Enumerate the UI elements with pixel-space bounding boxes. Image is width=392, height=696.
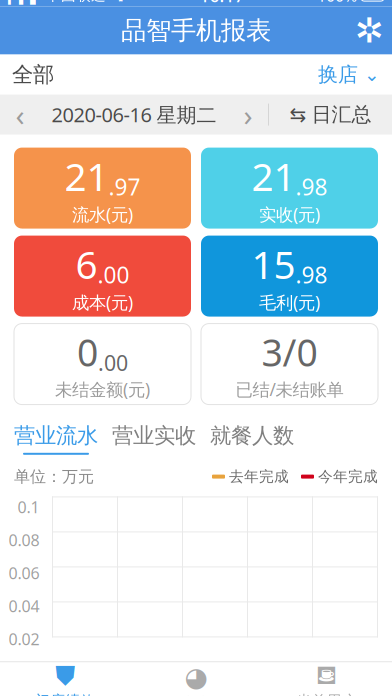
button[interactable]: 3/0 — [201, 324, 378, 405]
staticText: ᯤ — [106, 0, 127, 5]
staticText: ⛾ — [316, 664, 338, 690]
staticText: ⌄ — [358, 64, 380, 85]
staticText: ⇆ — [289, 103, 306, 126]
staticText: 去年完成 — [229, 468, 289, 486]
staticText: 0 — [77, 327, 98, 377]
button[interactable]: 15 — [201, 236, 378, 317]
button[interactable]: ‹ — [0, 95, 268, 135]
staticText: 营业流水 — [14, 423, 98, 449]
staticText: ▎▍▌ 中国联通 — [8, 0, 106, 5]
button[interactable]: ⇆ — [269, 95, 392, 135]
staticText: 就餐人数 — [210, 423, 294, 449]
button[interactable]: 营业实收 — [112, 423, 196, 455]
staticText: 流水(元) — [72, 203, 133, 226]
staticText: .00 — [97, 260, 129, 290]
staticText: 0.02 — [8, 628, 39, 650]
staticText: .98 — [295, 172, 327, 202]
staticText: 门店绩效 — [35, 692, 95, 696]
button[interactable]: 21 — [14, 148, 191, 229]
staticText: 成本(元) — [72, 291, 133, 314]
button[interactable]: 全部 — [0, 55, 392, 95]
staticText: .97 — [108, 172, 140, 202]
staticText: .00 — [98, 348, 128, 377]
staticText: 毛利(元) — [259, 291, 320, 314]
staticText: 100% — [317, 0, 357, 6]
staticText: 16:17 — [199, 0, 244, 7]
staticText: 0.04 — [8, 595, 39, 617]
staticText: 0.1 — [17, 496, 39, 518]
staticText: 3/0 — [261, 327, 317, 377]
staticText: ✲ — [354, 11, 383, 50]
staticText: 0.06 — [8, 562, 39, 584]
staticText: .98 — [295, 260, 327, 290]
staticText: › — [243, 95, 252, 134]
staticText: 今年完成 — [318, 468, 378, 486]
staticText: 营业实收 — [112, 423, 196, 449]
staticText: 换店 — [318, 62, 358, 87]
staticText: 日汇总 — [311, 102, 371, 127]
staticText: 21 — [251, 150, 295, 202]
staticText: 实收(元) — [259, 203, 320, 226]
staticText: 未结金额(元) — [55, 378, 150, 401]
staticText: 已结/未结账单 — [235, 378, 343, 401]
staticText: 单位：万元 — [14, 467, 94, 486]
button[interactable]: ◕ — [131, 662, 261, 696]
staticText: 0.08 — [8, 529, 39, 551]
button[interactable]: ⛾ — [261, 662, 392, 696]
staticText: 21 — [64, 150, 108, 202]
staticText: ⛊ — [55, 664, 75, 690]
staticText: ◕ — [184, 662, 207, 692]
button[interactable]: 6 — [14, 236, 191, 317]
button[interactable]: Settings — [346, 8, 392, 54]
button[interactable]: 21 — [201, 148, 378, 229]
staticText: 6 — [75, 238, 97, 290]
button[interactable]: 0 — [14, 324, 191, 405]
button[interactable]: 营业流水 — [14, 423, 98, 455]
staticText: 15 — [251, 238, 295, 290]
button[interactable]: 就餐人数 — [210, 423, 294, 455]
staticText: 当前用户 — [297, 692, 357, 696]
staticText: ‹ — [15, 95, 24, 134]
button[interactable]: ⛊ — [0, 662, 131, 696]
staticText: 全部 — [12, 61, 54, 88]
staticText: 2020-06-16 星期二 — [51, 101, 216, 128]
staticText: 品智手机报表 — [121, 15, 271, 46]
